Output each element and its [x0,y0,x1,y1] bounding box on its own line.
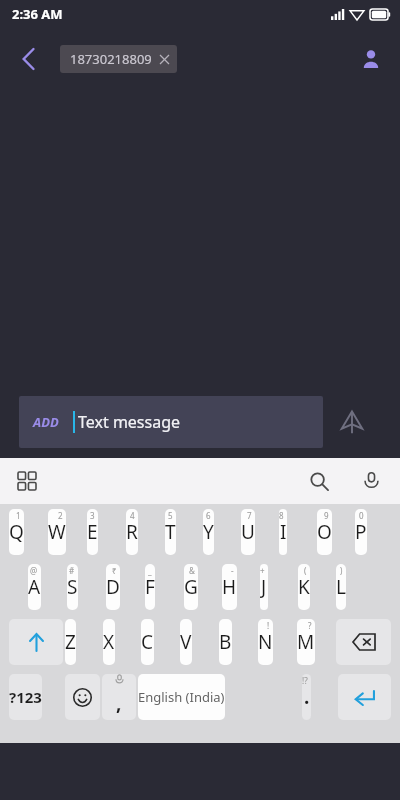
button[interactable]: Voice input [354,464,388,498]
staticText: 1 [16,510,21,521]
staticText: W [48,519,66,545]
button[interactable]: H [222,564,237,610]
staticText: . [304,684,310,710]
button[interactable]: N [258,619,273,665]
button[interactable]: Keyboard modes [10,464,44,498]
staticText: ₹ [112,565,117,576]
button[interactable]: R [126,509,138,555]
button[interactable]: 18730218809 [60,45,177,73]
staticText: S [67,574,78,600]
staticText: X [103,629,115,655]
button[interactable]: Contacts [350,38,392,80]
button[interactable]: F [145,564,155,610]
staticText: English (India) [138,688,225,706]
staticText: Q [9,519,24,545]
staticText: J [261,574,267,600]
staticText: - [231,565,234,576]
button[interactable]: Search [302,464,336,498]
staticText: 6 [206,510,211,521]
staticText: E [87,519,98,545]
button[interactable]: B [219,619,232,665]
button[interactable]: X [103,619,115,665]
staticText: 9 [324,510,329,521]
staticText: V [180,629,192,655]
button[interactable]: V [180,619,192,665]
staticText: 7 [247,510,252,521]
staticText: K [298,574,310,600]
button[interactable]: Backspace [336,619,391,665]
button[interactable]: Y [203,509,214,555]
staticText: !? [302,675,308,686]
staticText: B [219,629,232,655]
button[interactable]: L [336,564,346,610]
staticText: , [116,690,122,716]
staticText: Text message [78,411,181,433]
staticText: M [297,629,315,655]
staticText: 18730218809 [70,50,152,68]
button[interactable]: U [241,509,255,555]
button[interactable]: J [260,564,268,610]
staticText: + [260,565,265,576]
staticText: D [106,574,120,600]
button[interactable]: ADD [19,396,323,448]
staticText: G [184,574,198,600]
button[interactable]: English (India) [138,674,225,720]
staticText: Z [65,629,76,655]
button[interactable]: . [302,674,311,720]
staticText: C [141,629,154,655]
button[interactable]: E [87,509,98,555]
staticText: _ [148,565,152,576]
staticText: # [69,565,75,576]
staticText: 0 [359,510,364,521]
button[interactable]: I [279,509,287,555]
staticText: F [145,574,155,600]
staticText: ADD [33,413,59,431]
staticText: ! [267,620,270,631]
button[interactable]: Emoji [65,674,100,720]
button[interactable]: K [298,564,310,610]
button[interactable]: W [48,509,66,555]
staticText: & [189,565,195,576]
button[interactable]: S [67,564,78,610]
staticText: A [28,574,41,600]
button[interactable]: Q [9,509,24,555]
button[interactable]: D [106,564,120,610]
staticText: L [336,574,346,600]
staticText: 4 [130,510,135,521]
staticText: 2:36 AM [12,5,63,23]
button[interactable]: M [297,619,315,665]
staticText: 5 [168,510,173,521]
staticText: P [355,519,367,545]
button[interactable]: O [317,509,332,555]
button[interactable]: Comma, voice input [102,674,136,720]
button[interactable]: A [28,564,41,610]
staticText: ? [308,620,312,631]
button[interactable]: Shift [9,619,63,665]
staticText: U [241,519,255,545]
staticText: H [222,574,237,600]
button[interactable]: T [165,509,176,555]
staticText: 8 [279,510,284,521]
staticText: ?123 [9,687,42,707]
staticText: 3 [90,510,95,521]
button[interactable]: Z [65,619,76,665]
staticText: 2 [58,510,63,521]
staticText: N [258,629,273,655]
button[interactable]: Send [323,396,381,448]
staticText: R [126,519,138,545]
button[interactable]: P [355,509,367,555]
staticText: Y [203,519,214,545]
button[interactable]: C [141,619,154,665]
button[interactable]: ?123 [9,674,42,720]
button[interactable]: Back [10,40,48,78]
staticText: T [165,519,176,545]
staticText: ( [304,565,307,576]
staticText: I [280,519,287,545]
button[interactable]: Enter [338,674,391,720]
button[interactable]: G [184,564,198,610]
staticText: ) [340,565,343,576]
staticText: @ [30,565,38,576]
staticText: O [317,519,332,545]
